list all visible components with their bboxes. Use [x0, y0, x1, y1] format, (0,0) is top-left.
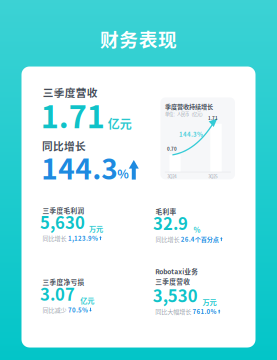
staticText: 同比增长 — [42, 234, 66, 242]
staticText: 144.3 — [41, 147, 118, 188]
staticText: 三季度毛利润 — [42, 205, 84, 215]
staticText: 1.71 — [41, 93, 105, 137]
staticText: 三季度净亏损 — [42, 277, 84, 287]
staticText: 同比增长 — [42, 138, 86, 153]
staticText: 0.70 — [167, 146, 177, 152]
staticText: 26.4个百分点 — [181, 235, 219, 243]
staticText: % — [193, 224, 200, 235]
staticText: 同比减少 — [42, 305, 66, 314]
staticText: 3Q25 — [208, 173, 217, 179]
staticText: 单位：人民币（亿元） — [165, 111, 205, 117]
staticText: 1.71 — [208, 115, 218, 121]
staticText: 3.07 — [40, 281, 75, 305]
staticText: 万元 — [89, 223, 103, 234]
staticText: 70.5% — [68, 305, 88, 314]
staticText: Robotaxi业务 — [155, 266, 198, 276]
staticText: 三季度营收 — [43, 84, 98, 100]
staticText: 3Q24 — [167, 173, 176, 179]
staticText: 3,530 — [153, 283, 198, 307]
staticText: 同比增长 — [155, 235, 179, 243]
staticText: 32.9 — [153, 211, 188, 235]
staticText: 5,630 — [40, 210, 85, 234]
staticText: 三季度营收 — [155, 277, 190, 286]
staticText: 亿元 — [108, 115, 132, 132]
staticText: 财务表现 — [100, 25, 177, 52]
staticText: 毛利率 — [155, 206, 176, 216]
staticText: 季度营收持续增长 — [165, 102, 213, 111]
staticText: 761.0% — [193, 307, 217, 316]
staticText: 1,123.9% — [68, 234, 98, 242]
staticText: 万元 — [202, 297, 216, 307]
staticText: % — [117, 164, 129, 182]
staticText: 同比大幅增长 — [155, 307, 191, 316]
staticText: 亿元 — [80, 295, 94, 305]
staticText: 144.3% — [179, 130, 203, 139]
